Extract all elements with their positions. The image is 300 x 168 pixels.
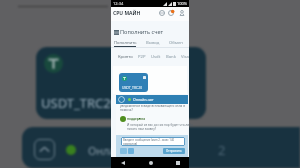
button[interactable]: Bank [166,54,176,60]
button[interactable]: USDT_TRC20 [36,47,206,119]
button[interactable]: Profile [179,10,185,16]
button[interactable]: USDT_TRC20 [119,73,148,92]
button[interactable]: Emoji [128,148,134,154]
button[interactable]: Крипто [118,54,133,60]
staticText: Обмен [169,40,183,46]
button[interactable]: Visa [181,54,189,60]
button[interactable]: Attach file [120,148,127,154]
button[interactable]: Notifications [168,10,174,16]
staticText: поддержка [127,117,145,121]
staticText: USDT_TRC20 [122,85,143,90]
staticText: Вывод [146,40,160,46]
staticText: 2 [218,141,226,159]
button[interactable]: Collapse [22,127,300,168]
button[interactable]: Back [119,159,126,166]
staticText: Онлайн-чат [133,97,154,102]
button[interactable]: Введите сообщение (мин 2 - макс 140 симв… [121,137,185,146]
staticText: И который из вас до сих пор будет что-ли… [127,123,193,131]
button[interactable]: Вывод [146,40,160,46]
staticText: 100% [177,1,188,6]
button[interactable]: Usdt [151,54,161,60]
button[interactable]: Обмен [169,40,183,46]
staticText: P2P [138,54,146,60]
button[interactable]: Language [159,10,165,16]
staticText: Пополнить [114,40,137,46]
button[interactable]: Recents [174,159,181,166]
other: Collapse [34,139,55,160]
staticText: CPU МАЙН [113,10,141,17]
staticText: USDT_TRC20 [41,94,119,112]
button[interactable]: Онлайн-чат [116,95,188,104]
staticText: Онлайн [88,143,130,158]
staticText: уведомление в виде всплывающего окна в п… [120,104,185,112]
staticText: Отправить [166,149,182,153]
staticText: Пополнить счет [120,28,164,36]
button[interactable]: Home [147,159,154,166]
staticText: 12:34 [113,1,124,6]
staticText: Крипто [118,54,133,60]
staticText: Введите сообщение (мин 2 - макс 140 симв… [123,138,175,145]
button[interactable]: Пополнить [114,40,137,46]
staticText: Bank [166,54,176,60]
button[interactable]: Отправить [163,148,185,154]
staticText: Visa [181,54,189,60]
staticText: Usdt [151,54,161,60]
button[interactable]: P2P [138,54,146,60]
